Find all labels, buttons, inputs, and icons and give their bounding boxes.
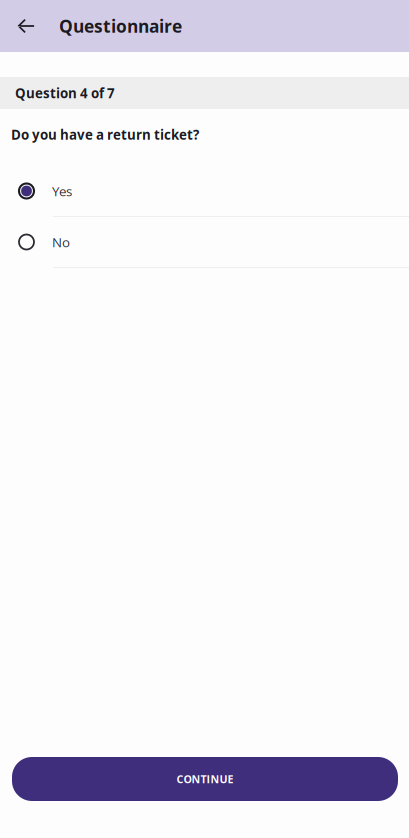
staticText: Question 4 of 7 — [15, 84, 115, 102]
staticText: Questionnaire — [59, 14, 182, 38]
staticText: Yes — [52, 182, 72, 200]
button[interactable]: No — [0, 217, 409, 268]
button[interactable]: Yes — [0, 166, 409, 217]
staticText: CONTINUE — [176, 772, 233, 786]
staticText: Do you have a return ticket? — [11, 125, 199, 144]
staticText: No — [52, 233, 70, 251]
button[interactable]: Back — [0, 0, 52, 52]
button[interactable]: CONTINUE — [12, 757, 398, 801]
